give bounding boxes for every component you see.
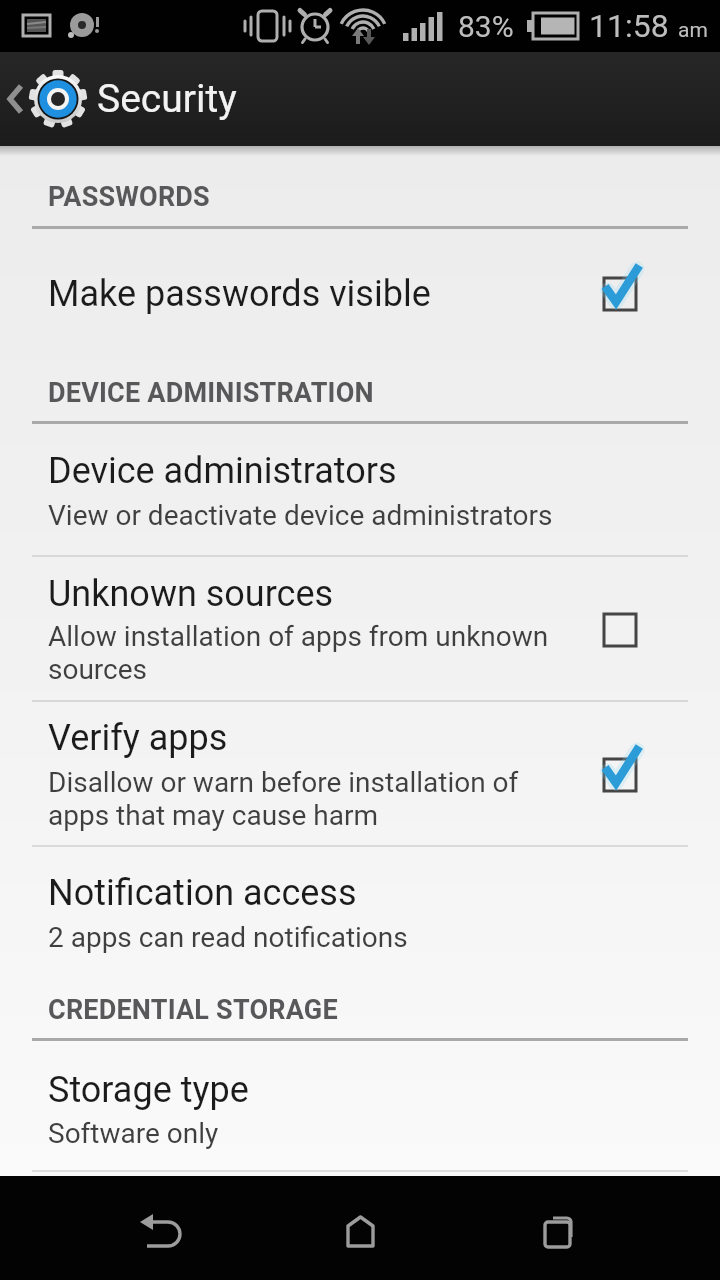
staticText: Verify apps: [48, 717, 228, 759]
staticText: PASSWORDS: [48, 181, 210, 213]
staticText: 11:58: [589, 7, 669, 45]
button[interactable]: [0, 557, 720, 700]
staticText: 83%: [458, 9, 514, 44]
staticText: DEVICE ADMINISTRATION: [48, 377, 374, 409]
button[interactable]: [0, 702, 720, 845]
staticText: Security: [97, 76, 237, 122]
staticText: 2 apps can read notifications: [48, 921, 408, 954]
staticText: Unknown sources: [48, 573, 334, 615]
button[interactable]: [240, 1176, 480, 1280]
button[interactable]: [0, 52, 288, 146]
button[interactable]: [480, 1176, 720, 1280]
staticText: Allow installation of apps from unknown …: [48, 620, 549, 686]
button[interactable]: [0, 847, 720, 962]
staticText: CREDENTIAL STORAGE: [48, 994, 338, 1026]
staticText: Disallow or warn before installation of …: [48, 766, 519, 832]
staticText: am: [678, 18, 708, 43]
button[interactable]: [0, 1176, 240, 1280]
staticText: Software only: [48, 1117, 219, 1150]
staticText: Make passwords visible: [48, 273, 431, 315]
staticText: View or deactivate device administrators: [48, 499, 553, 532]
button[interactable]: [0, 426, 720, 555]
staticText: Storage type: [48, 1069, 249, 1111]
button[interactable]: [0, 1042, 720, 1170]
button[interactable]: [0, 232, 720, 352]
staticText: Device administrators: [48, 450, 397, 492]
staticText: Notification access: [48, 872, 357, 914]
